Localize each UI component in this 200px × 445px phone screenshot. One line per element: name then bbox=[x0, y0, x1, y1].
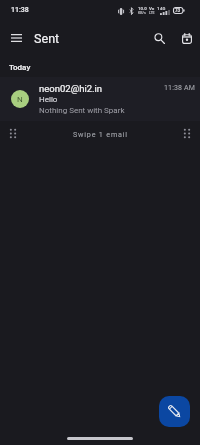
staticText: 11:38 AM bbox=[164, 84, 196, 92]
staticText: 10.0 bbox=[138, 6, 147, 11]
staticText: 11:38 bbox=[11, 6, 29, 14]
button[interactable]: Search bbox=[147, 26, 171, 50]
staticText: Hello bbox=[39, 95, 58, 104]
staticText: Today bbox=[9, 63, 31, 72]
staticText: KB/s bbox=[138, 11, 146, 15]
staticText: neon02@hi2.in bbox=[39, 83, 103, 94]
button[interactable]: Calendar bbox=[175, 26, 199, 50]
staticText: N bbox=[17, 95, 23, 104]
staticText: 73 bbox=[175, 8, 181, 13]
staticText: Sent bbox=[34, 31, 60, 46]
button[interactable]: N bbox=[0, 77, 200, 121]
button[interactable]: Menu bbox=[4, 26, 28, 50]
button[interactable]: Compose bbox=[159, 396, 190, 427]
staticText: Swipe 1 email bbox=[73, 130, 128, 138]
staticText: Vo bbox=[149, 6, 155, 11]
staticText: LTE bbox=[149, 11, 155, 15]
staticText: 4G bbox=[160, 6, 166, 11]
staticText: 1 bbox=[157, 6, 160, 11]
staticText: Nothing Sent with Spark bbox=[39, 106, 125, 115]
